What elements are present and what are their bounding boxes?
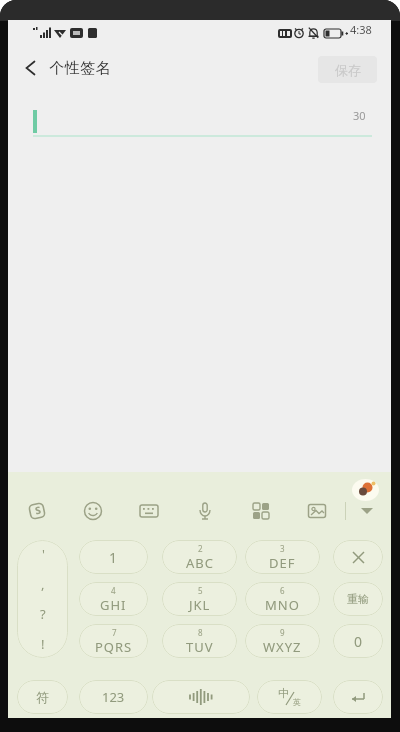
button[interactable] — [16, 54, 44, 82]
staticText: JKL — [189, 596, 211, 614]
staticText: , — [41, 575, 45, 593]
staticText: 5 — [198, 585, 203, 596]
staticText: 重输 — [347, 592, 369, 606]
button[interactable]: 中 — [257, 680, 322, 714]
button[interactable] — [152, 680, 250, 714]
staticText: GHI — [100, 596, 127, 614]
button[interactable]: 0 — [333, 624, 383, 658]
button[interactable]: 符 — [17, 680, 68, 714]
staticText: DEF — [269, 554, 296, 572]
button[interactable]: 1 — [79, 540, 148, 574]
button[interactable] — [247, 497, 275, 525]
staticText: ? — [40, 605, 46, 623]
button[interactable]: 4 — [79, 582, 148, 616]
staticText: ! — [41, 635, 45, 653]
button[interactable]: 2 — [162, 540, 237, 574]
button[interactable]: 5 — [162, 582, 237, 616]
staticText: 符 — [36, 689, 49, 705]
button[interactable]: 7 — [79, 624, 148, 658]
staticText: 4:38 — [350, 22, 372, 37]
staticText: TUV — [186, 638, 214, 656]
staticText: 6 — [280, 585, 285, 596]
staticText: S — [34, 502, 42, 517]
staticText: 7 — [112, 627, 117, 638]
staticText: 123 — [102, 688, 125, 706]
button[interactable]: 6 — [245, 582, 320, 616]
button[interactable] — [333, 680, 383, 714]
staticText: PQRS — [95, 638, 133, 656]
staticText: 保存 — [335, 62, 361, 78]
staticText: 8 — [198, 627, 203, 638]
staticText: 9 — [280, 627, 285, 638]
button[interactable] — [79, 497, 107, 525]
button[interactable] — [333, 540, 383, 574]
staticText: 中 — [278, 686, 289, 700]
button[interactable]: 3 — [245, 540, 320, 574]
staticText: 0 — [354, 632, 363, 651]
staticText: 4 — [111, 585, 116, 596]
staticText: 2 — [198, 543, 203, 554]
button[interactable]: 重输 — [333, 582, 383, 616]
button[interactable]: 8 — [162, 624, 237, 658]
staticText: 个性签名 — [49, 59, 111, 78]
staticText: 3 — [280, 543, 285, 554]
button[interactable]: 123 — [79, 680, 148, 714]
button[interactable]: 保存 — [318, 56, 377, 83]
staticText: 30 — [353, 108, 366, 123]
staticText: MNO — [265, 596, 300, 614]
staticText: WXYZ — [263, 638, 302, 656]
staticText: ' — [42, 545, 45, 563]
button[interactable] — [135, 497, 163, 525]
button[interactable] — [354, 497, 380, 525]
staticText: 1 — [109, 548, 118, 567]
button[interactable]: ' — [17, 540, 68, 658]
button[interactable]: 9 — [245, 624, 320, 658]
button[interactable] — [303, 497, 331, 525]
button[interactable] — [191, 497, 219, 525]
staticText: ABC — [186, 554, 214, 572]
staticText: 英 — [293, 697, 301, 707]
button[interactable] — [23, 497, 51, 525]
